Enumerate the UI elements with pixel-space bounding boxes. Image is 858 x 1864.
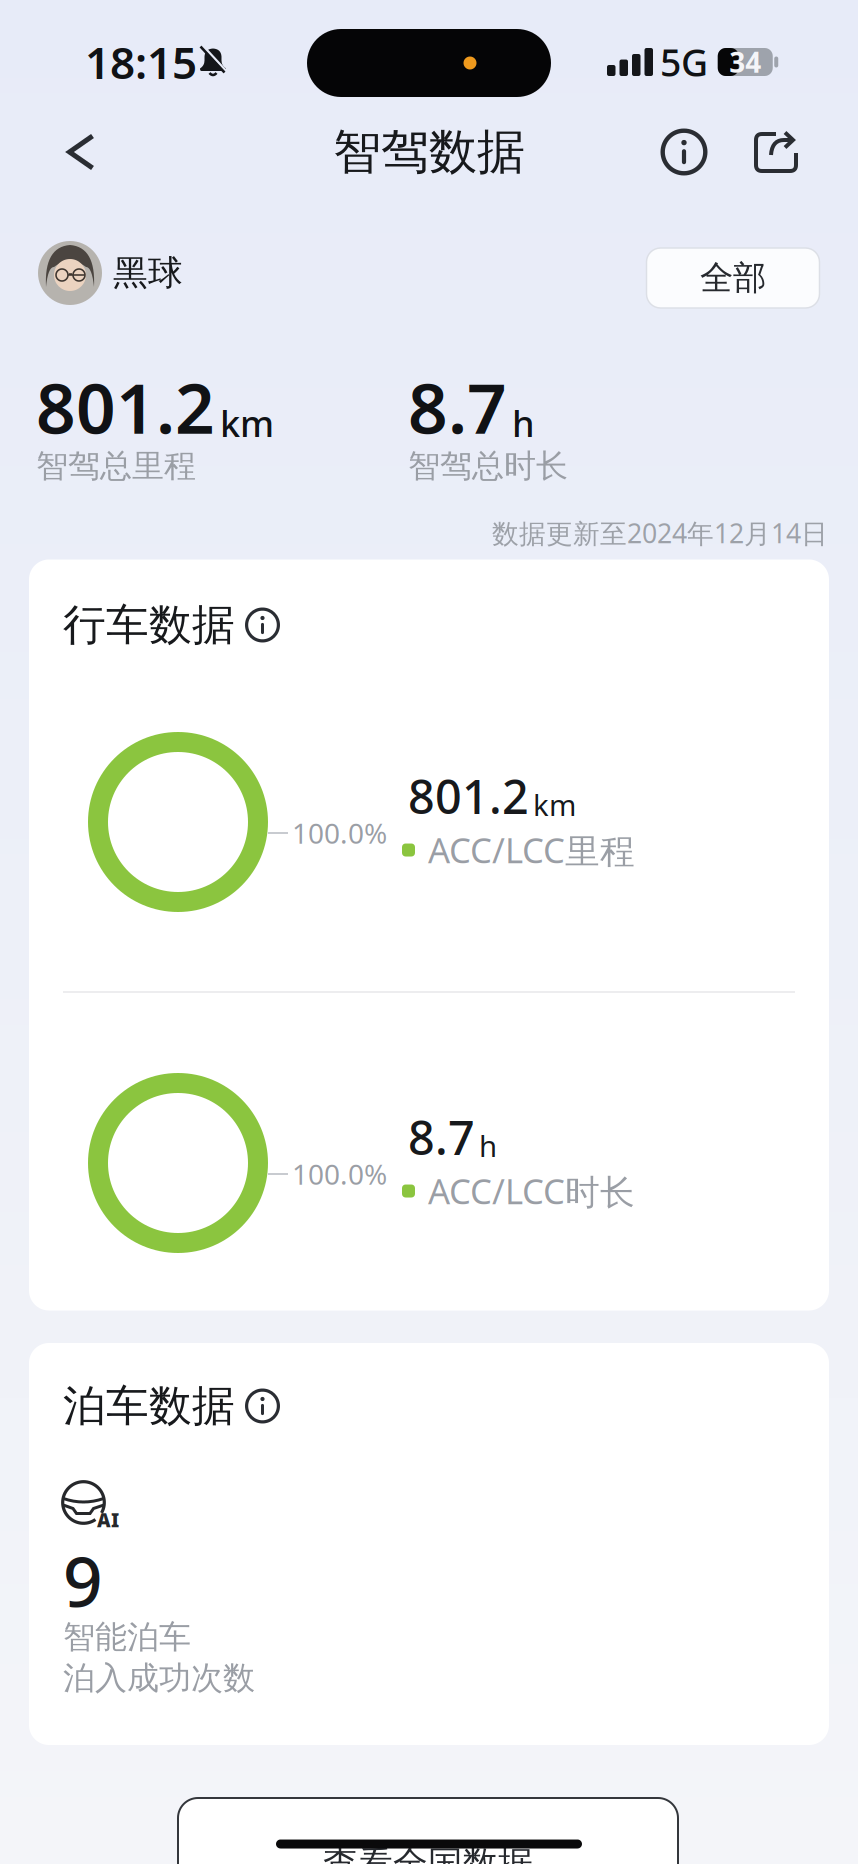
staticText: AI <box>97 1508 119 1532</box>
staticText: km <box>220 399 274 447</box>
staticText: 34 <box>729 43 761 81</box>
staticText: 智驾数据 <box>333 122 525 181</box>
staticText: 数据更新至2024年12月14日 <box>492 515 828 551</box>
staticText: 8.7 <box>408 1106 475 1168</box>
staticText: 全部 <box>700 257 766 298</box>
staticText: 智驾总里程 <box>36 446 196 486</box>
staticText: ACC/LCC里程 <box>428 827 635 873</box>
staticText: ACC/LCC时长 <box>428 1168 635 1214</box>
staticText: 8.7 <box>408 361 507 453</box>
staticText: 黑球 <box>113 252 183 294</box>
staticText: 9 <box>63 1534 103 1626</box>
staticText: 18:15 <box>85 33 197 91</box>
staticText: 智能泊车 <box>63 1617 191 1657</box>
button[interactable]: Share <box>746 123 806 181</box>
staticText: 801.2 <box>36 361 215 453</box>
button[interactable]: 全部 <box>646 248 819 308</box>
staticText: h <box>479 1126 497 1165</box>
staticText: 5G <box>660 37 708 87</box>
staticText: 泊入成功次数 <box>63 1658 255 1698</box>
staticText: 801.2 <box>408 765 529 827</box>
staticText: 100.0% <box>292 814 387 852</box>
staticText: 查看全国数据 <box>323 1843 533 1864</box>
staticText: 泊车数据 <box>63 1380 235 1432</box>
staticText: 智驾总时长 <box>408 446 568 486</box>
staticText: 行车数据 <box>63 599 235 651</box>
staticText: h <box>512 399 535 447</box>
button[interactable]: 查看全国数据 <box>178 1798 678 1864</box>
staticText: km <box>533 785 576 824</box>
staticText: 100.0% <box>292 1155 387 1193</box>
button[interactable]: Info <box>652 120 715 183</box>
button[interactable]: Back <box>52 119 110 184</box>
